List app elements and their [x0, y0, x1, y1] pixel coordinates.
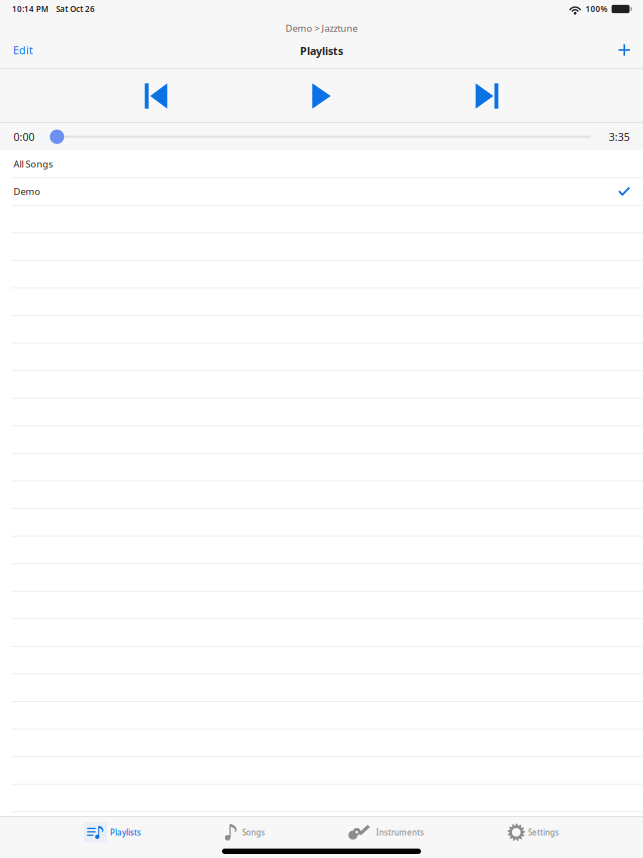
button[interactable]: Edit — [0, 37, 61, 63]
staticText: Settings — [528, 827, 559, 838]
staticText: Sat Oct 26 — [56, 4, 95, 14]
button[interactable]: Next track — [465, 76, 509, 116]
button[interactable]: Instruments — [348, 820, 424, 844]
button[interactable]: Previous track — [134, 76, 178, 116]
staticText: 100% — [586, 4, 608, 14]
staticText: Demo — [13, 185, 40, 198]
staticText: Playlists — [300, 44, 343, 58]
button[interactable]: Add playlist — [594, 37, 643, 63]
staticText: 3:35 — [609, 130, 630, 144]
staticText: Playlists — [110, 827, 141, 838]
button[interactable]: Playlists — [84, 820, 141, 844]
staticText: Instruments — [376, 827, 424, 838]
staticText: Edit — [13, 43, 33, 57]
staticText: 10:14 PM — [12, 4, 48, 14]
staticText: Demo > Jazztune — [285, 22, 357, 34]
staticText: Songs — [242, 827, 265, 838]
staticText: All Songs — [13, 158, 52, 170]
button[interactable]: Songs — [224, 820, 265, 844]
staticText: 0:00 — [13, 130, 34, 144]
button[interactable]: Play — [299, 76, 343, 116]
button[interactable]: Settings — [507, 820, 559, 844]
